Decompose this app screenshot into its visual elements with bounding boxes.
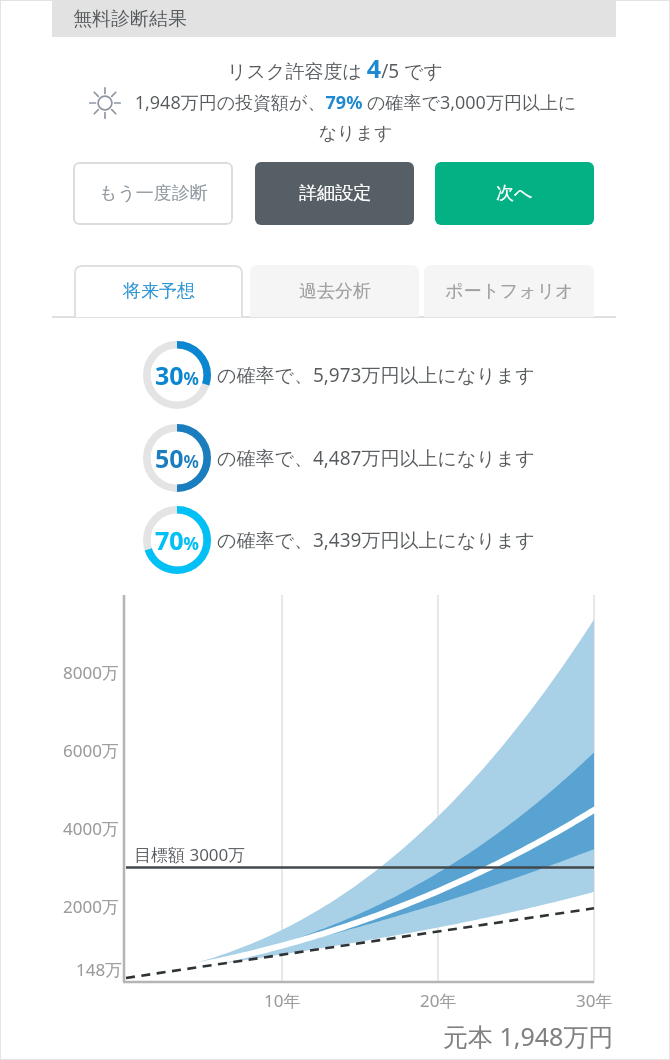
staticText: 無料診断結果	[73, 7, 187, 31]
staticText: 30年	[576, 989, 613, 1012]
staticText: もう一度診断	[99, 182, 208, 205]
button[interactable]: 70%	[143, 506, 211, 574]
staticText: 50%	[155, 441, 199, 475]
button[interactable]: 30%	[143, 341, 211, 409]
staticText: 4000万	[63, 817, 119, 840]
staticText: 70%	[155, 523, 199, 557]
staticText: リスク許容度は 4/5 です	[0, 51, 670, 85]
button[interactable]: 詳細設定	[255, 162, 414, 225]
staticText: 元本 1,948万円	[443, 1019, 614, 1053]
button[interactable]: ポートフォリオ	[424, 265, 594, 317]
staticText: 10年	[264, 989, 301, 1012]
staticText: 8000万	[63, 661, 119, 684]
button[interactable]: 50%	[143, 424, 211, 492]
staticText: ポートフォリオ	[445, 280, 574, 303]
staticText: 148万	[76, 958, 123, 981]
staticText: 次へ	[496, 182, 533, 205]
staticText: 目標額 3000万	[134, 843, 246, 866]
staticText: 2000万	[63, 895, 119, 918]
staticText: 過去分析	[299, 280, 371, 303]
button[interactable]: 次へ	[435, 162, 594, 225]
staticText: 20年	[420, 989, 457, 1012]
staticText: の確率で、3,439万円以上になります	[217, 527, 535, 553]
staticText: の確率で、4,487万円以上になります	[217, 445, 535, 471]
staticText: 1,948万円の投資額が、79% の確率で3,000万円以上に なります	[125, 90, 586, 145]
staticText: 6000万	[63, 739, 119, 762]
staticText: 30%	[155, 358, 199, 392]
button[interactable]: 過去分析	[250, 265, 419, 317]
staticText: 将来予想	[123, 280, 195, 303]
button[interactable]: もう一度診断	[73, 162, 233, 225]
staticText: 詳細設定	[299, 182, 371, 205]
button[interactable]: 無料診断結果	[52, 0, 616, 37]
staticText: の確率で、5,973万円以上になります	[217, 362, 535, 388]
button[interactable]: 将来予想	[74, 265, 243, 317]
